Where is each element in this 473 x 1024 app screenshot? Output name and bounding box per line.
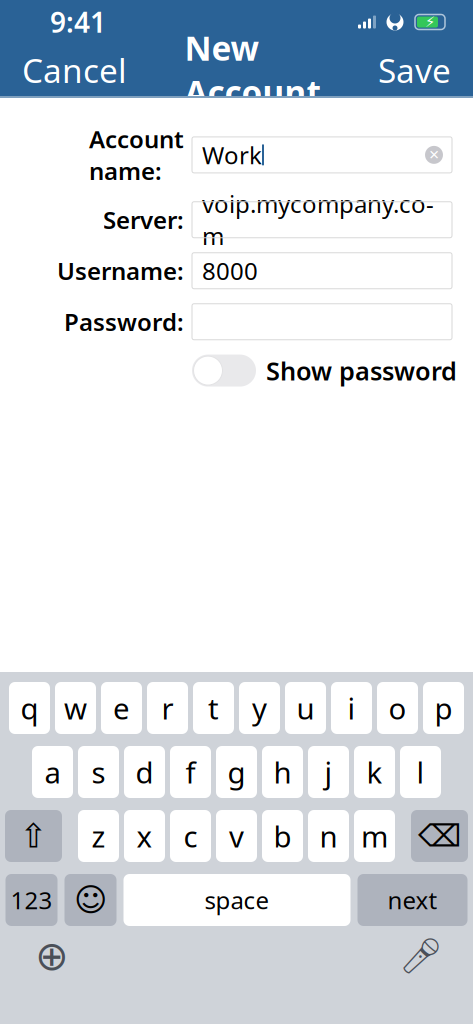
staticText: Password:: [64, 306, 184, 338]
staticText: d: [135, 752, 153, 791]
staticText: m: [361, 816, 388, 855]
staticText: u: [296, 688, 314, 727]
button[interactable]: d: [124, 746, 165, 798]
button[interactable]: w: [55, 682, 96, 734]
staticText: i: [347, 688, 355, 727]
button[interactable]: Dictation: [399, 934, 443, 978]
staticText: 123: [10, 884, 52, 916]
staticText: t: [208, 688, 219, 727]
staticText: l: [416, 752, 424, 791]
staticText: ⇧: [19, 817, 47, 855]
staticText: r: [161, 688, 173, 727]
button[interactable]: Shift: [5, 810, 62, 862]
button[interactable]: n: [308, 810, 349, 862]
button[interactable]: Delete: [411, 810, 468, 862]
staticText: Save: [378, 48, 451, 92]
button[interactable]: j: [308, 746, 349, 798]
staticText: w: [64, 688, 87, 727]
button[interactable]: next: [357, 874, 467, 926]
button[interactable]: t: [193, 682, 234, 734]
staticText: f: [185, 752, 195, 791]
button[interactable]: q: [9, 682, 50, 734]
staticText: c: [183, 816, 197, 855]
button[interactable]: y: [239, 682, 280, 734]
staticText: Username:: [57, 255, 184, 287]
button[interactable]: e: [101, 682, 142, 734]
button[interactable]: v: [216, 810, 257, 862]
button[interactable]: g: [216, 746, 257, 798]
button[interactable]: k: [354, 746, 395, 798]
staticText: ☺: [74, 882, 107, 918]
button[interactable]: h: [262, 746, 303, 798]
staticText: q: [20, 688, 38, 727]
staticText: ⚡︎: [425, 14, 435, 30]
staticText: 9:41: [50, 3, 106, 41]
button[interactable]: i: [331, 682, 372, 734]
button[interactable]: space: [123, 874, 350, 926]
staticText: New Account: [184, 26, 320, 114]
staticText: 8000: [202, 255, 258, 287]
button[interactable]: Cancel: [8, 40, 141, 100]
staticText: k: [366, 752, 382, 791]
staticText: x: [136, 816, 152, 855]
staticText: ⌫: [418, 819, 461, 853]
button[interactable]: o: [377, 682, 418, 734]
button[interactable]: a: [32, 746, 73, 798]
staticText: 🎤︎: [399, 936, 443, 976]
staticText: voip.mycompany.com: [202, 188, 434, 252]
staticText: p: [434, 688, 452, 727]
staticText: b: [273, 816, 291, 855]
button[interactable]: r: [147, 682, 188, 734]
staticText: v: [229, 816, 244, 855]
button[interactable]: m: [354, 810, 395, 862]
button[interactable]: l: [400, 746, 441, 798]
staticText: Account name:: [89, 123, 184, 187]
staticText: Server:: [103, 204, 184, 236]
button[interactable]: 123: [5, 874, 57, 926]
button[interactable]: Emoji: [64, 874, 116, 926]
staticText: ⊕: [35, 933, 69, 979]
staticText: next: [387, 884, 437, 916]
staticText: n: [319, 816, 337, 855]
button[interactable]: z: [78, 810, 119, 862]
staticText: s: [91, 752, 105, 791]
button[interactable]: Save: [364, 40, 465, 100]
button[interactable]: u: [285, 682, 326, 734]
button[interactable]: f: [170, 746, 211, 798]
button[interactable]: b: [262, 810, 303, 862]
staticText: a: [44, 752, 60, 791]
staticText: Work: [202, 139, 262, 171]
button[interactable]: Show password: [192, 355, 256, 387]
staticText: y: [252, 688, 267, 727]
staticText: o: [388, 688, 406, 727]
staticText: space: [204, 884, 269, 916]
staticText: j: [324, 752, 332, 791]
button[interactable]: c: [170, 810, 211, 862]
button[interactable]: Next keyboard: [30, 934, 74, 978]
staticText: ✕: [428, 147, 439, 162]
staticText: g: [227, 752, 245, 791]
button[interactable]: x: [124, 810, 165, 862]
staticText: e: [113, 688, 130, 727]
staticText: Show password: [266, 354, 457, 387]
button[interactable]: s: [78, 746, 119, 798]
staticText: z: [91, 816, 105, 855]
staticText: Cancel: [22, 48, 127, 92]
button[interactable]: p: [423, 682, 464, 734]
staticText: h: [273, 752, 291, 791]
